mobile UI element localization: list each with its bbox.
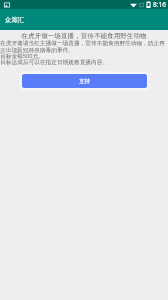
button[interactable]: 支持 <box>22 74 147 88</box>
staticText: 8:16 <box>153 0 166 9</box>
staticText: 在虎牙做一场直播，宣传不能食用野生动物 <box>0 32 168 40</box>
other: Screenshot notification <box>4 2 10 8</box>
button[interactable]: 众筹汇 <box>0 9 168 30</box>
staticText: 支持 <box>79 78 91 85</box>
staticText: 众筹汇 <box>5 16 25 24</box>
staticText: 在虎牙邀请当红主播做一场直播，宣传不能食用野生动物，防止再次出现新冠肺炎病毒的事… <box>0 40 168 65</box>
